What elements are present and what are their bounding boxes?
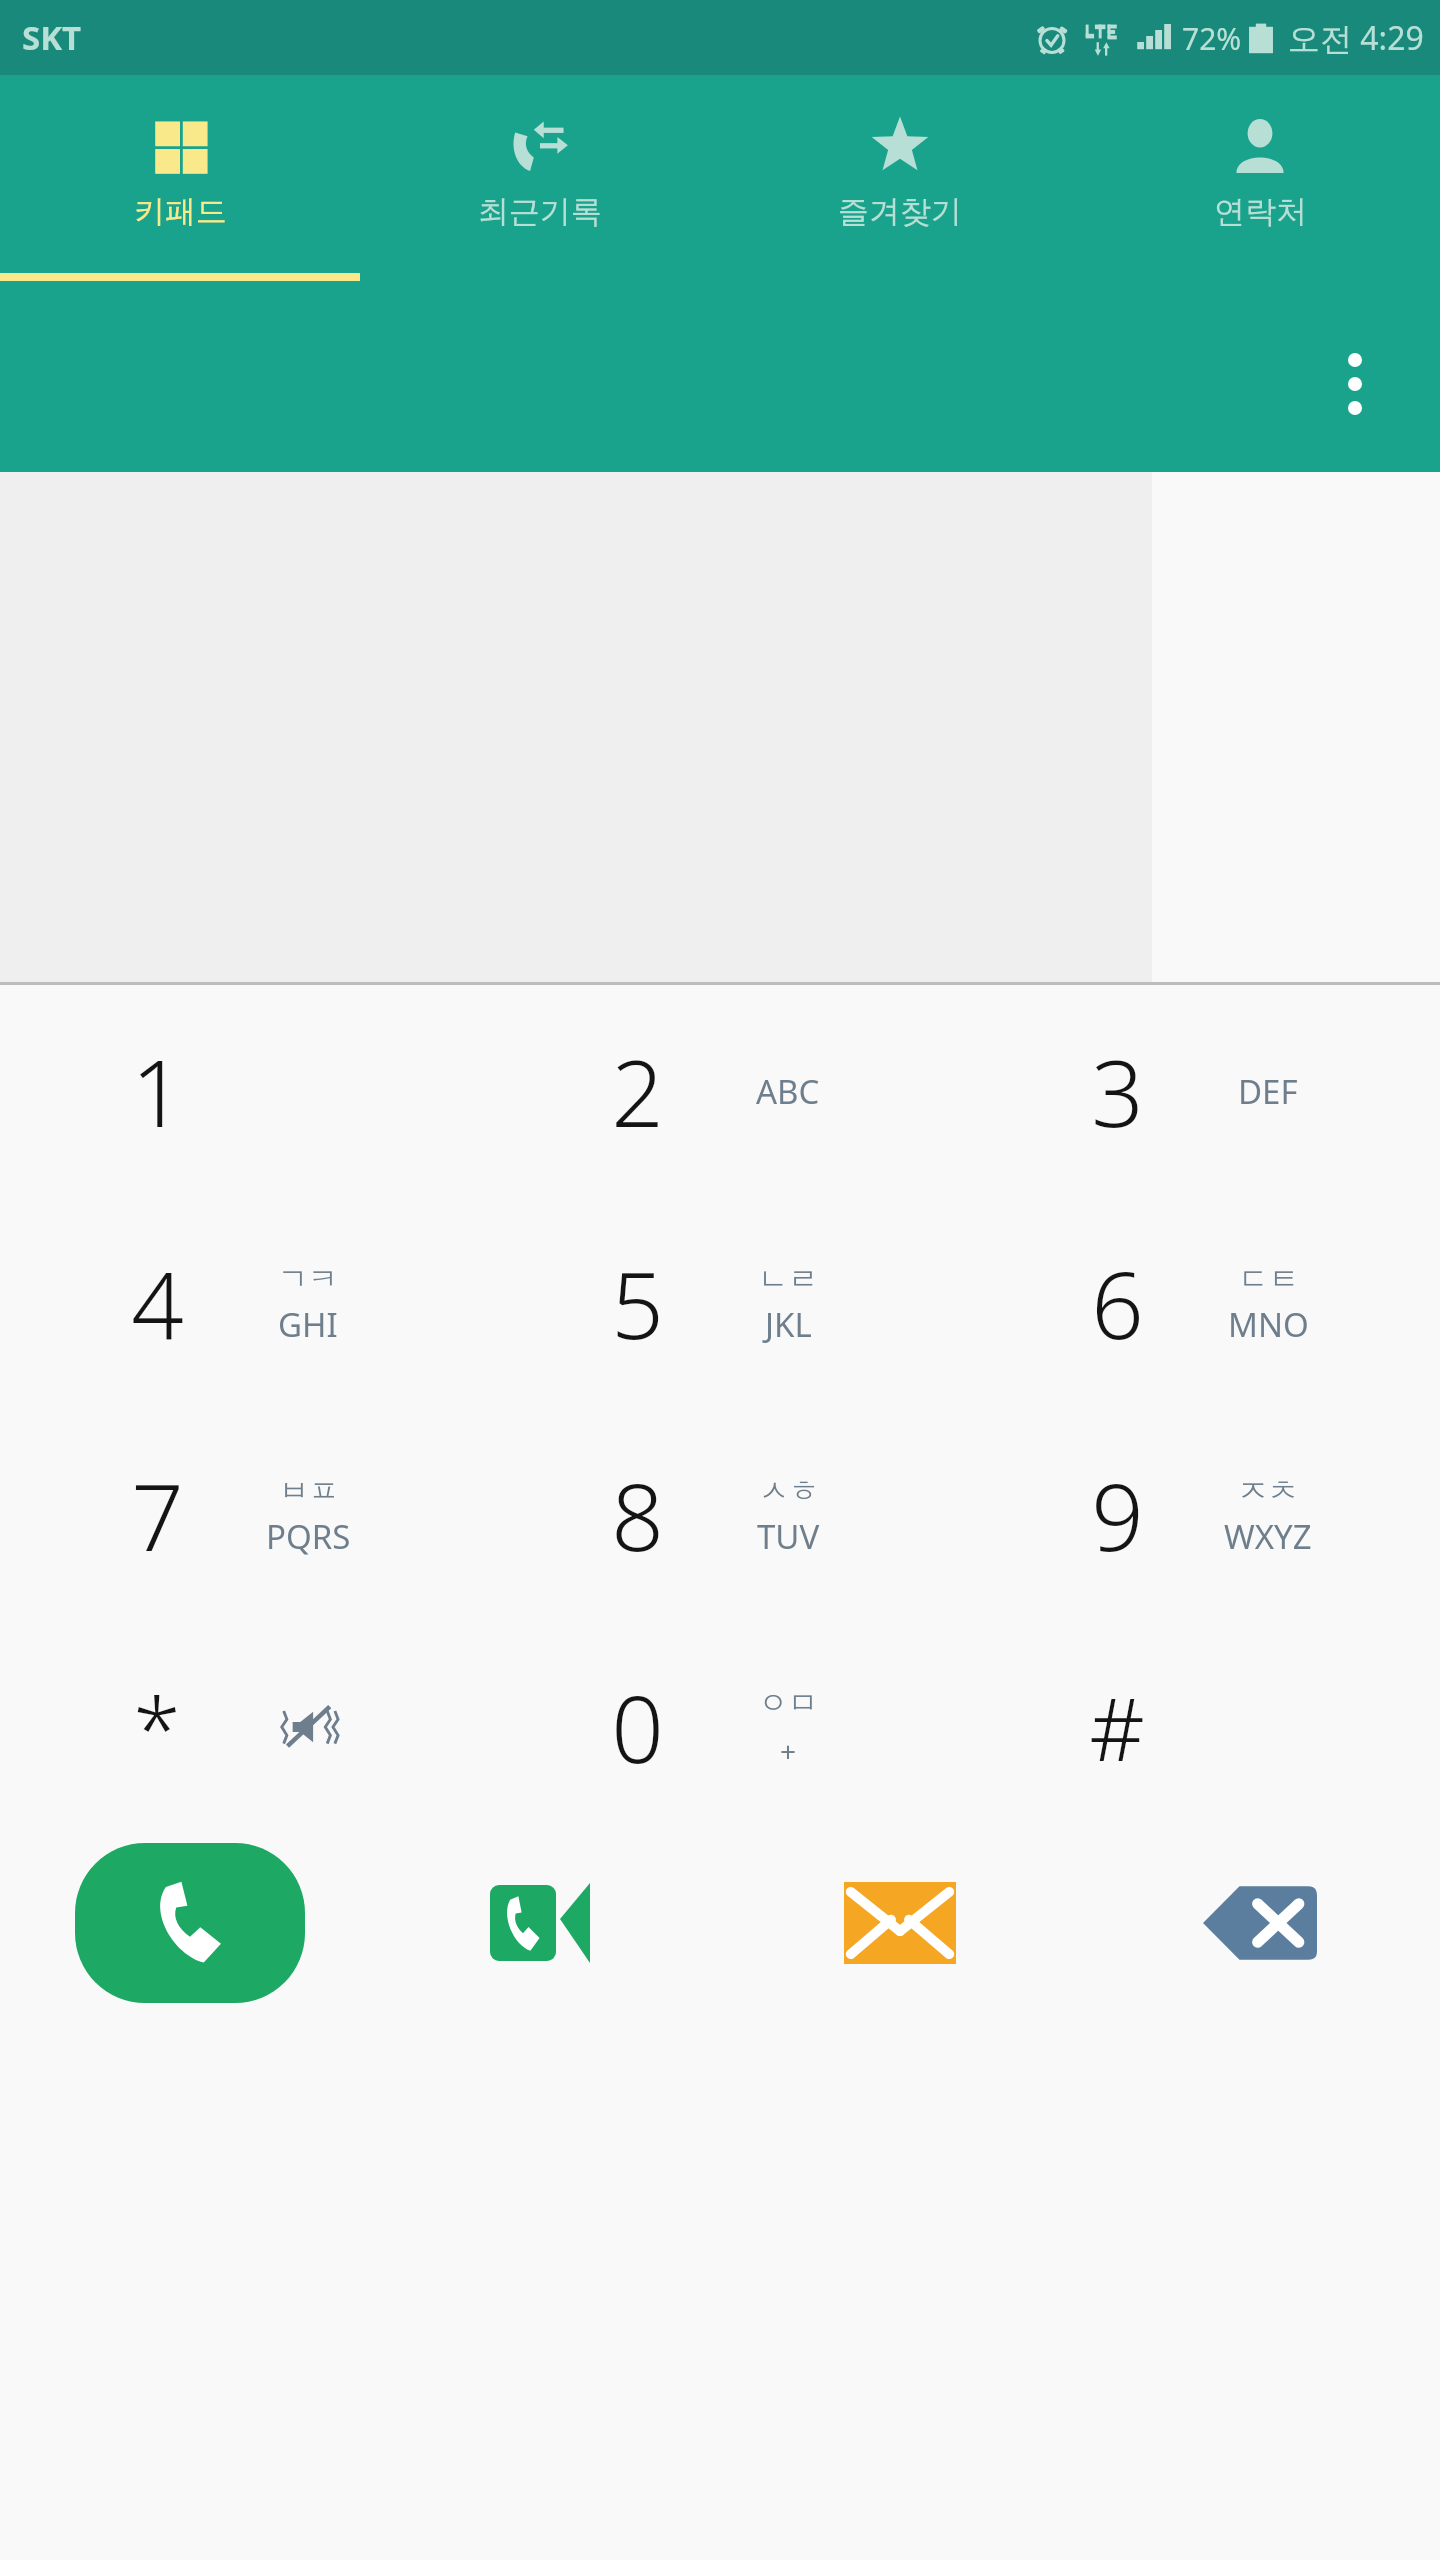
- button[interactable]: 즐겨찾기: [720, 75, 1080, 295]
- button[interactable]: 0: [480, 1621, 960, 1833]
- button[interactable]: 3: [960, 985, 1440, 1197]
- staticText: ㅅㅎ: [759, 1472, 819, 1510]
- button[interactable]: More options: [1310, 339, 1400, 429]
- staticText: ABC: [756, 1069, 820, 1114]
- staticText: TUV: [757, 1514, 820, 1559]
- staticText: 오전 4:29: [1288, 16, 1424, 60]
- staticText: SKT: [22, 15, 82, 60]
- staticText: 0: [611, 1665, 664, 1790]
- button[interactable]: 2: [480, 985, 960, 1197]
- staticText: MNO: [1228, 1302, 1309, 1347]
- staticText: ㄴㄹ: [758, 1260, 818, 1298]
- staticText: *: [133, 1669, 181, 1786]
- button[interactable]: #: [960, 1621, 1440, 1833]
- button[interactable]: Call: [75, 1843, 305, 2003]
- staticText: 6: [1091, 1241, 1144, 1366]
- staticText: 9: [1091, 1453, 1144, 1578]
- staticText: +: [780, 1732, 797, 1770]
- button[interactable]: *: [0, 1621, 480, 1833]
- staticText: GHI: [278, 1302, 338, 1347]
- staticText: ㅈㅊ: [1238, 1472, 1298, 1510]
- staticText: 5: [611, 1241, 664, 1366]
- staticText: 4: [131, 1241, 184, 1366]
- button[interactable]: 7: [0, 1409, 480, 1621]
- button[interactable]: Video call: [475, 1858, 605, 1988]
- staticText: PQRS: [266, 1514, 351, 1559]
- button[interactable]: 1: [0, 985, 480, 1197]
- staticText: ㄱㅋ: [278, 1260, 338, 1298]
- staticText: ㄷㅌ: [1239, 1260, 1299, 1298]
- staticText: 1: [131, 1029, 184, 1154]
- button[interactable]: Send message: [835, 1858, 965, 1988]
- staticText: #: [1089, 1669, 1145, 1786]
- staticText: DEF: [1238, 1069, 1298, 1114]
- staticText: 7: [131, 1453, 184, 1578]
- button[interactable]: 최근기록: [360, 75, 720, 295]
- button[interactable]: 8: [480, 1409, 960, 1621]
- button[interactable]: 5: [480, 1197, 960, 1409]
- staticText: 즐겨찾기: [838, 192, 962, 231]
- staticText: 3: [1091, 1029, 1144, 1154]
- staticText: 8: [611, 1453, 664, 1578]
- staticText: 연락처: [1214, 192, 1307, 231]
- button[interactable]: Backspace: [1195, 1858, 1325, 1988]
- staticText: 72%: [1182, 18, 1242, 59]
- button[interactable]: 연락처: [1080, 75, 1440, 295]
- staticText: 최근기록: [478, 192, 602, 231]
- button[interactable]: 키패드: [0, 75, 360, 295]
- staticText: ㅂㅍ: [279, 1472, 339, 1510]
- button[interactable]: 9: [960, 1409, 1440, 1621]
- staticText: 키패드: [134, 192, 227, 231]
- staticText: ㅇㅁ: [758, 1684, 818, 1722]
- staticText: WXYZ: [1224, 1514, 1312, 1559]
- staticText: 2: [611, 1029, 664, 1154]
- button[interactable]: 4: [0, 1197, 480, 1409]
- staticText: JKL: [765, 1302, 812, 1347]
- button[interactable]: 6: [960, 1197, 1440, 1409]
